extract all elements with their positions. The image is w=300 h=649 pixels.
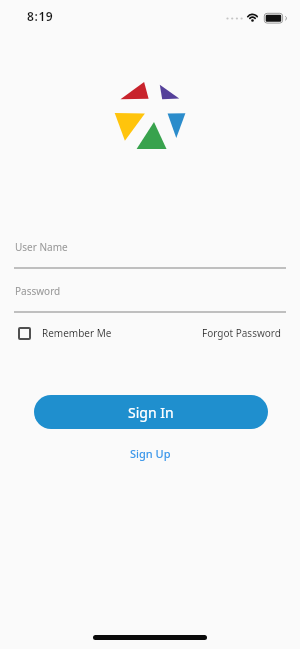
staticText: Sign Up [130, 446, 171, 461]
staticText: 8:19 [27, 8, 54, 24]
button[interactable]: Sign In [34, 395, 268, 429]
staticText: Remember Me [42, 326, 112, 340]
staticText: User Name [15, 240, 68, 254]
staticText: Sign In [128, 403, 174, 422]
staticText: Forgot Password [202, 326, 281, 340]
staticText: Password [15, 284, 61, 298]
button[interactable]: Forgot Password [176, 326, 281, 340]
button[interactable]: Sign Up [124, 444, 177, 463]
button[interactable]: Remember Me [18, 326, 112, 340]
